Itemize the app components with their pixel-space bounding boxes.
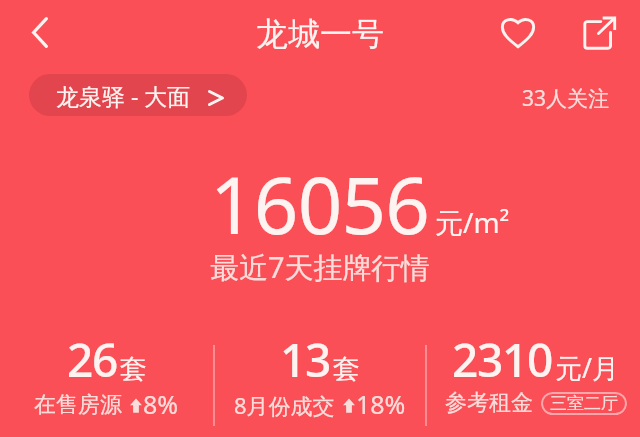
staticText: 最近7天挂牌行情 [210,247,430,287]
staticText: 三室二厅 [550,393,618,414]
staticText: 套 [333,352,360,386]
staticText: 2310 [452,328,553,391]
staticText: 33人关注 [522,84,610,113]
button[interactable]: 2310 [431,328,640,419]
staticText: 8% [143,387,179,421]
staticText: 参考租金 [445,389,533,417]
staticText: 套 [120,352,147,386]
staticText: 26 [67,328,118,391]
staticText: 元/m² [435,203,510,241]
staticText: 8月份成交 [234,390,335,420]
staticText: 在售房源 [34,391,122,419]
staticText: 16056 [210,151,430,257]
button[interactable]: 26 [0,328,213,425]
staticText: 13 [280,328,331,391]
button[interactable]: Back [15,7,65,57]
button[interactable]: Favorite [494,8,542,56]
button[interactable]: Share [575,8,623,56]
button[interactable]: 13 [213,328,426,425]
staticText: 18% [356,387,406,421]
staticText: 龙泉驿 - 大面 [56,80,191,111]
staticText: 元/月 [555,349,620,386]
button[interactable]: 龙泉驿 - 大面 [29,74,247,116]
staticText: 龙城一号 [256,14,384,54]
